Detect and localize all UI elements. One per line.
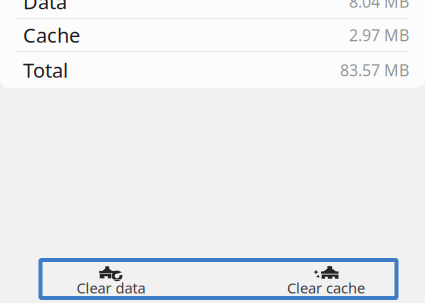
staticText: Data	[23, 0, 67, 15]
staticText: 83.57 MB	[340, 59, 409, 81]
staticText: Clear data	[76, 278, 145, 297]
staticText: Clear cache	[287, 278, 365, 297]
staticText: Total	[23, 57, 68, 83]
staticText: Cache	[23, 22, 80, 48]
button[interactable]: Clear cache	[218, 257, 425, 299]
staticText: 8.04 MB	[349, 0, 409, 12]
staticText: 2.97 MB	[349, 24, 409, 46]
button[interactable]: Clear data	[3, 257, 218, 299]
